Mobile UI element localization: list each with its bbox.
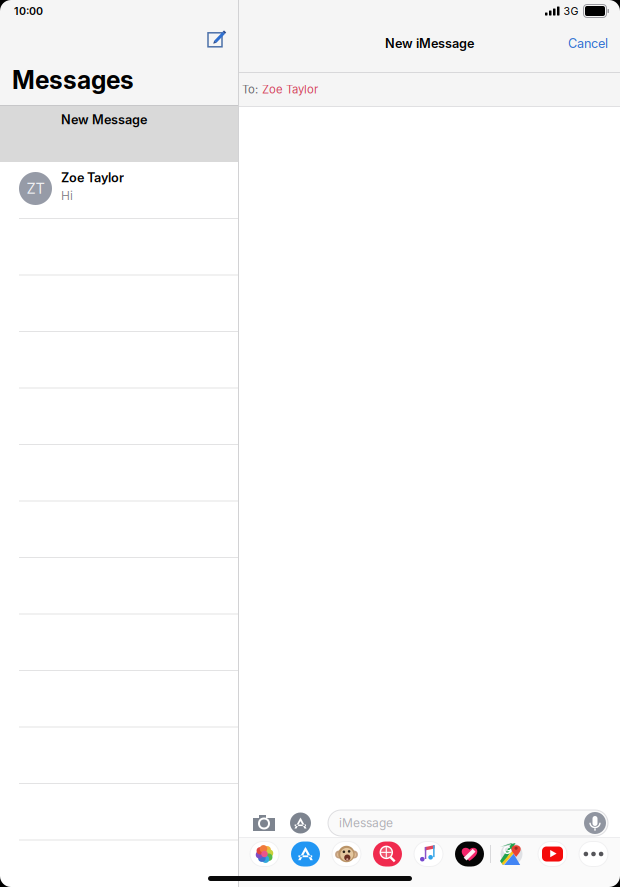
- staticText: Hi: [61, 188, 73, 203]
- button[interactable]: Compose: [198, 23, 238, 53]
- button[interactable]: ZT: [0, 162, 238, 219]
- staticText: Messages: [12, 65, 134, 95]
- staticText: Cancel: [568, 36, 608, 51]
- button[interactable]: Fitness: [449, 839, 490, 869]
- staticText: To:: [242, 83, 258, 96]
- staticText: ZT: [26, 180, 44, 197]
- staticText: New Message: [61, 112, 147, 127]
- button[interactable]: Search apps: [367, 839, 408, 869]
- button[interactable]: Memoji: [326, 839, 367, 869]
- button[interactable]: More: [573, 839, 614, 869]
- staticText: New iMessage: [385, 36, 474, 51]
- staticText: 10:00: [14, 4, 43, 17]
- button[interactable]: Photos: [244, 839, 285, 869]
- button[interactable]: YouTube: [532, 839, 573, 869]
- button[interactable]: Cancel: [568, 36, 620, 58]
- button[interactable]: App Store: [285, 839, 326, 869]
- button[interactable]: App Store: [290, 812, 311, 833]
- button[interactable]: New Message: [0, 105, 238, 162]
- staticText: Zoe Taylor: [262, 83, 318, 96]
- staticText: iMessage: [339, 816, 393, 830]
- staticText: 3G: [563, 4, 578, 17]
- staticText: Zoe Taylor: [61, 170, 124, 185]
- button[interactable]: iMessage: [328, 810, 608, 836]
- button[interactable]: Music: [408, 839, 449, 869]
- button[interactable]: Maps: [491, 839, 532, 869]
- button[interactable]: Camera: [252, 812, 276, 834]
